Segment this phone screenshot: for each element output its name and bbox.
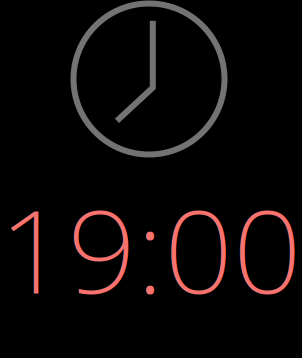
staticText: 19:00 — [0, 170, 300, 329]
